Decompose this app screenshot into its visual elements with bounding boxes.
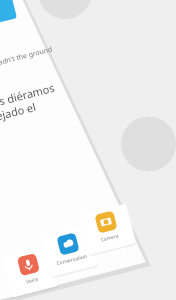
button[interactable]	[0, 0, 176, 300]
